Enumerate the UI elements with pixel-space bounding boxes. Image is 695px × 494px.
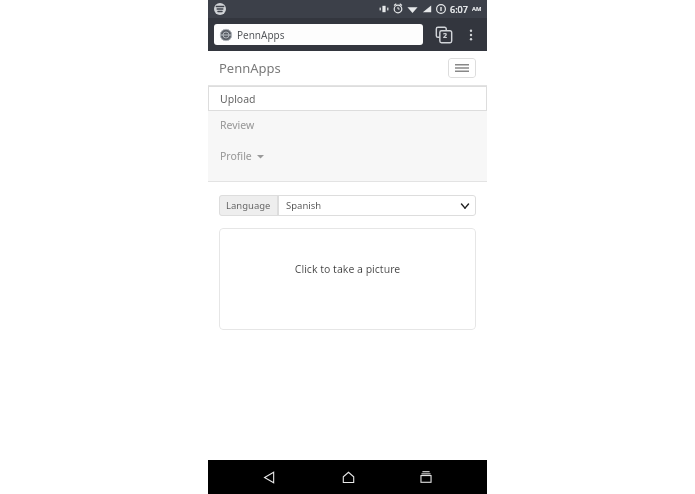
staticText: Language xyxy=(226,199,271,212)
button[interactable]: Review xyxy=(208,111,487,139)
staticText: Click to take a picture xyxy=(219,262,476,276)
button[interactable]: PennApps xyxy=(214,24,423,45)
staticText: Profile xyxy=(220,149,252,163)
staticText: PennApps xyxy=(237,28,285,42)
staticText: Upload xyxy=(220,92,256,106)
button[interactable]: Upload xyxy=(208,86,487,111)
staticText: 2 xyxy=(443,31,448,41)
button[interactable]: Tabs, 2 open xyxy=(433,24,455,46)
button[interactable]: More options xyxy=(461,25,481,45)
staticText: AM xyxy=(472,5,482,13)
button[interactable]: Toggle navigation xyxy=(448,58,476,78)
staticText: Review xyxy=(220,118,255,132)
button[interactable]: Profile xyxy=(208,139,487,173)
button[interactable]: Spanish xyxy=(278,195,476,216)
button[interactable]: Home xyxy=(331,460,365,494)
button[interactable]: Click to take a picture xyxy=(219,228,476,330)
button[interactable]: Language xyxy=(219,195,278,216)
staticText: Spanish xyxy=(286,199,322,212)
button[interactable]: PennApps xyxy=(219,59,281,77)
staticText: 6:07 xyxy=(450,3,468,15)
button[interactable]: Back xyxy=(252,460,286,494)
button[interactable]: Recent apps xyxy=(409,460,443,494)
